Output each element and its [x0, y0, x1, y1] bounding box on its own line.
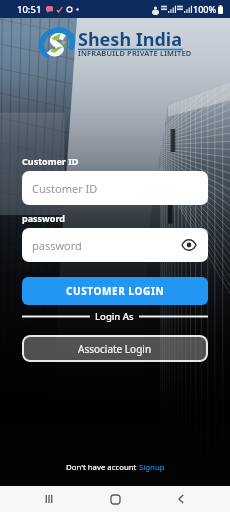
staticText: password — [22, 212, 65, 224]
staticText: password — [32, 238, 82, 253]
staticText: CUSTOMER LOGIN — [66, 284, 165, 298]
button[interactable]: Home — [98, 486, 132, 512]
staticText: Customer ID — [32, 181, 98, 196]
staticText: Signup — [139, 462, 165, 473]
staticText: Customer ID — [22, 155, 79, 167]
staticText: Associate Login — [78, 342, 152, 356]
button[interactable]: Associate Login — [22, 335, 208, 362]
staticText: Don't have account — [66, 462, 139, 473]
button[interactable]: Back — [164, 486, 198, 512]
staticText: 10:51 — [17, 3, 42, 16]
button[interactable]: password — [22, 228, 208, 262]
staticText: Shesh India — [78, 27, 183, 52]
staticText: Login As — [95, 310, 134, 323]
button[interactable]: CUSTOMER LOGIN — [22, 277, 208, 305]
button[interactable]: Show password — [180, 236, 198, 254]
staticText: 100% — [193, 3, 217, 15]
button[interactable]: Signup — [139, 462, 165, 473]
staticText: INFRABUILD PRIVATE LIMITED — [78, 48, 192, 58]
button[interactable]: Customer ID — [22, 171, 208, 205]
button[interactable]: Recent apps — [32, 486, 66, 512]
